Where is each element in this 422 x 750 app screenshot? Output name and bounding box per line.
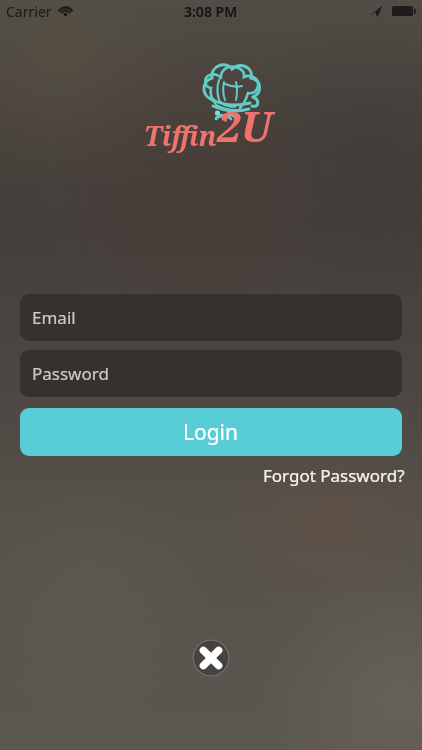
- button[interactable]: Password: [20, 350, 402, 397]
- staticText: Email: [32, 306, 76, 329]
- staticText: Password: [32, 362, 109, 385]
- staticText: Login: [183, 418, 239, 447]
- button[interactable]: Forgot Password?: [263, 464, 405, 487]
- staticText: Carrier: [6, 2, 52, 21]
- staticText: 3:08 PM: [184, 2, 238, 21]
- button[interactable]: [192, 639, 230, 677]
- staticText: Tiffin: [144, 117, 217, 154]
- staticText: Carrier: [6, 2, 52, 21]
- button[interactable]: Login: [20, 408, 402, 456]
- button[interactable]: Email: [20, 294, 402, 341]
- staticText: 3:08 PM: [184, 2, 238, 21]
- staticText: 2U: [217, 97, 272, 154]
